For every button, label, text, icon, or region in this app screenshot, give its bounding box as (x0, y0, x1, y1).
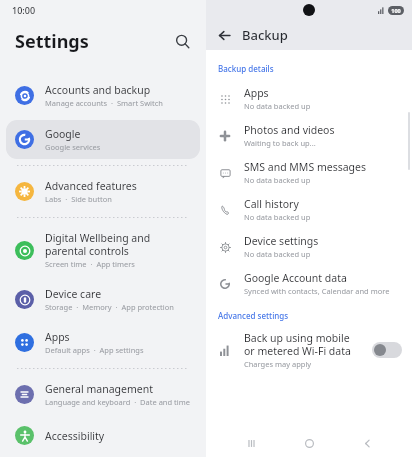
staticText: No data backed up (244, 101, 311, 111)
button[interactable]: Accounts and backup (6, 76, 200, 115)
staticText: SMS and MMS messages (244, 160, 366, 174)
button[interactable]: Back (354, 430, 380, 456)
staticText: Synced with contacts, Calendar and more (244, 286, 390, 296)
button[interactable]: Home (296, 430, 322, 456)
staticText: No data backed up (244, 249, 311, 259)
button[interactable]: Search (167, 26, 197, 56)
staticText: Backup details (218, 63, 274, 74)
staticText: Call history (244, 197, 299, 211)
button[interactable]: Back up using mobile or metered Wi-Fi da… (206, 325, 412, 375)
button[interactable]: Advanced features (6, 172, 200, 211)
staticText: General management (45, 382, 153, 396)
button[interactable]: SMS and MMS messages (206, 154, 412, 191)
staticText: 10:00 (12, 4, 36, 16)
button[interactable]: Google (6, 120, 200, 159)
staticText: Google (45, 127, 81, 141)
button[interactable]: Device care (6, 280, 200, 319)
staticText: Digital Wellbeing and parental controls (45, 231, 192, 258)
button[interactable]: Back up using mobile data toggle (372, 342, 402, 358)
staticText: Accessibility (45, 429, 105, 443)
button[interactable]: Recents (238, 430, 264, 456)
staticText: 100 (391, 7, 401, 14)
button[interactable]: Call history (206, 191, 412, 228)
staticText: No data backed up (244, 175, 311, 185)
staticText: Language and keyboard · Date and time (45, 397, 190, 407)
button[interactable]: General management (6, 375, 200, 414)
button[interactable]: Apps (206, 80, 412, 117)
staticText: Labs · Side button (45, 194, 112, 204)
button[interactable]: Photos and videos (206, 117, 412, 154)
staticText: Waiting to back up... (244, 138, 316, 148)
staticText: Photos and videos (244, 123, 335, 137)
staticText: Advanced features (45, 179, 137, 193)
button[interactable]: Accessibility (6, 419, 200, 452)
staticText: Manage accounts · Smart Switch (45, 98, 163, 108)
staticText: Google Account data (244, 271, 347, 285)
staticText: Device care (45, 287, 102, 301)
button[interactable]: Back (212, 23, 236, 47)
staticText: Google services (45, 142, 101, 152)
staticText: Backup (242, 26, 288, 44)
button[interactable]: Google Account data (206, 265, 412, 302)
staticText: Screen time · App timers (45, 259, 135, 269)
staticText: Default apps · App settings (45, 345, 144, 355)
staticText: Advanced settings (218, 310, 289, 321)
staticText: Apps (45, 330, 70, 344)
button[interactable]: Digital Wellbeing and parental controls (6, 224, 200, 276)
staticText: Back up using mobile or metered Wi-Fi da… (244, 331, 351, 358)
staticText: Settings (15, 29, 89, 54)
staticText: No data backed up (244, 212, 311, 222)
staticText: Storage · Memory · App protection (45, 302, 174, 312)
button[interactable]: Apps (6, 323, 200, 362)
staticText: Accounts and backup (45, 83, 151, 97)
staticText: Apps (244, 86, 269, 100)
staticText: Device settings (244, 234, 319, 248)
button[interactable]: Device settings (206, 228, 412, 265)
staticText: Charges may apply (244, 359, 312, 369)
